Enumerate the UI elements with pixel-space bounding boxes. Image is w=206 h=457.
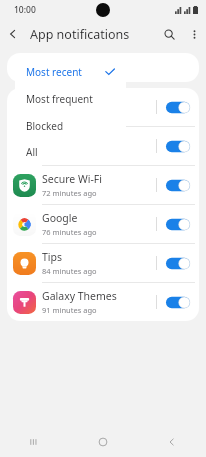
staticText: App notifications xyxy=(30,26,130,43)
staticText: Galaxy Themes xyxy=(42,289,117,303)
button[interactable]: Toggle notifications xyxy=(157,88,199,126)
button[interactable]: Toggle notifications xyxy=(157,283,199,321)
staticText: 10:00 xyxy=(14,4,36,16)
staticText: All xyxy=(26,145,38,159)
staticText: Most recent xyxy=(26,65,82,79)
button[interactable]: Tips xyxy=(7,244,199,282)
button[interactable]: Most frequent xyxy=(15,85,126,112)
button[interactable]: Blocked xyxy=(15,112,126,139)
button[interactable]: More options xyxy=(182,22,206,46)
button[interactable]: Toggle notifications xyxy=(157,244,199,282)
staticText: 84 minutes ago xyxy=(42,266,97,276)
button[interactable]: Most recent xyxy=(15,58,126,85)
button[interactable]: Toggle notifications xyxy=(157,205,199,243)
button[interactable]: Toggle notifications xyxy=(7,88,199,126)
button[interactable]: Search xyxy=(156,21,182,47)
staticText: Most frequent xyxy=(26,92,93,106)
staticText: Secure Wi-Fi xyxy=(42,172,103,186)
button[interactable]: All xyxy=(15,139,126,165)
button[interactable]: Toggle notifications xyxy=(7,127,199,165)
button[interactable]: Google xyxy=(7,205,199,243)
button[interactable]: Home xyxy=(68,427,137,457)
button[interactable]: Toggle notifications xyxy=(157,166,199,204)
button[interactable]: Back xyxy=(137,427,206,457)
button[interactable]: Back xyxy=(0,21,26,47)
button[interactable]: Galaxy Themes xyxy=(7,283,199,321)
staticText: Tips xyxy=(42,250,63,264)
staticText: Blocked xyxy=(26,119,64,133)
staticText: 72 minutes ago xyxy=(42,188,97,198)
button[interactable]: Secure Wi-Fi xyxy=(7,166,199,204)
button[interactable]: Recents xyxy=(0,427,68,457)
staticText: 91 minutes ago xyxy=(42,305,97,315)
staticText: Google xyxy=(42,211,78,225)
staticText: 76 minutes ago xyxy=(42,227,97,237)
button[interactable]: Toggle notifications xyxy=(157,127,199,165)
